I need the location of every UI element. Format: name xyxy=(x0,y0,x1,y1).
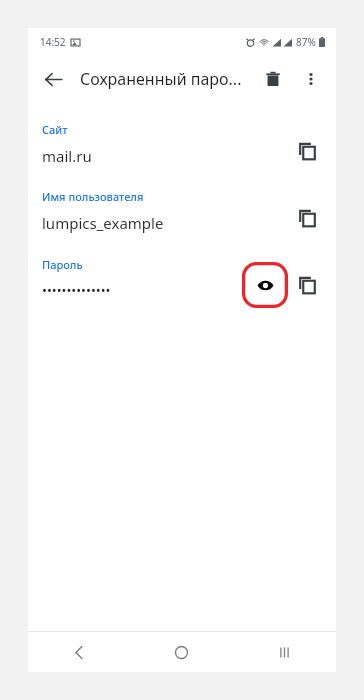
button[interactable]: Show password xyxy=(246,266,284,304)
button[interactable]: Back xyxy=(34,60,72,98)
staticText: Сайт xyxy=(42,122,68,137)
button[interactable]: Back xyxy=(28,632,130,672)
button[interactable]: More options xyxy=(292,60,330,98)
staticText: mail.ru xyxy=(42,146,92,166)
button[interactable]: Delete xyxy=(254,60,292,98)
staticText: lumpics_example xyxy=(42,213,164,233)
button[interactable]: Home xyxy=(130,632,233,672)
button[interactable]: Copy xyxy=(288,199,326,237)
button[interactable]: Copy xyxy=(288,132,326,170)
staticText: 87% xyxy=(296,35,316,49)
staticText: 14:52 xyxy=(40,35,66,49)
staticText: Пароль xyxy=(42,257,83,272)
button[interactable]: Recent apps xyxy=(233,632,336,672)
button[interactable]: Copy xyxy=(288,266,326,304)
staticText: Имя пользователя xyxy=(42,189,144,204)
staticText: •••••••••••••• xyxy=(42,281,111,299)
staticText: Сохраненный паро... xyxy=(80,68,254,90)
